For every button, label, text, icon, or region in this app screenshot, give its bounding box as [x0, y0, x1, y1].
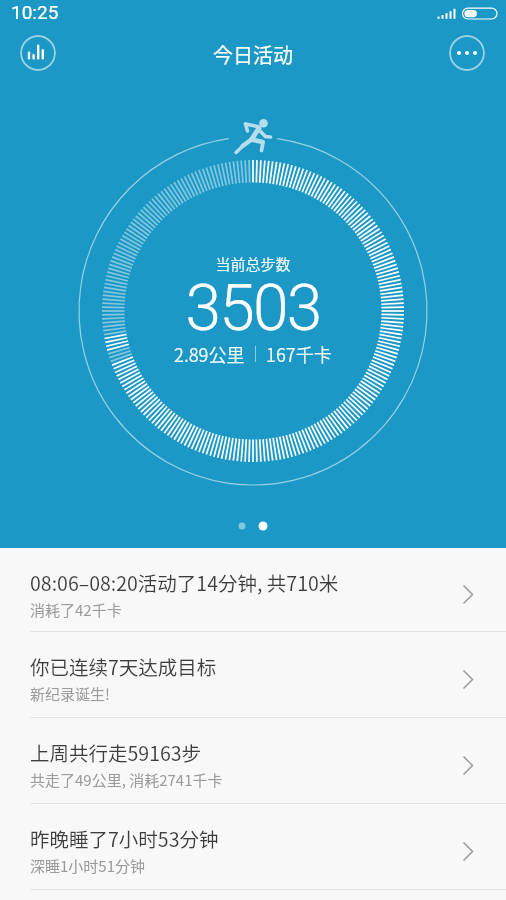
staticText: 当前总步数: [0, 253, 506, 275]
staticText: 消耗了42千卡: [30, 599, 122, 621]
button[interactable]: [20, 35, 56, 71]
button[interactable]: 上周共行走59163步: [0, 718, 506, 804]
staticText: 上周共行走59163步: [30, 738, 202, 766]
staticText: 3503: [0, 271, 506, 346]
button[interactable]: 你已连续7天达成目标: [0, 632, 506, 718]
button[interactable]: 昨晚睡了7小时53分钟: [0, 804, 506, 890]
button[interactable]: 08:06–08:20活动了14分钟, 共710米: [0, 548, 506, 632]
staticText: 167千卡: [266, 341, 332, 367]
staticText: 共走了49公里, 消耗2741千卡: [30, 769, 223, 791]
staticText: 昨晚睡了7小时53分钟: [30, 824, 219, 852]
staticText: 10:25: [11, 1, 59, 23]
staticText: 你已连续7天达成目标: [30, 652, 217, 680]
staticText: 新纪录诞生!: [30, 683, 110, 705]
button[interactable]: [449, 35, 485, 71]
staticText: 08:06–08:20活动了14分钟, 共710米: [30, 568, 339, 596]
staticText: 今日活动: [0, 40, 506, 69]
staticText: 深睡1小时51分钟: [30, 855, 145, 877]
staticText: 2.89公里: [174, 341, 245, 367]
